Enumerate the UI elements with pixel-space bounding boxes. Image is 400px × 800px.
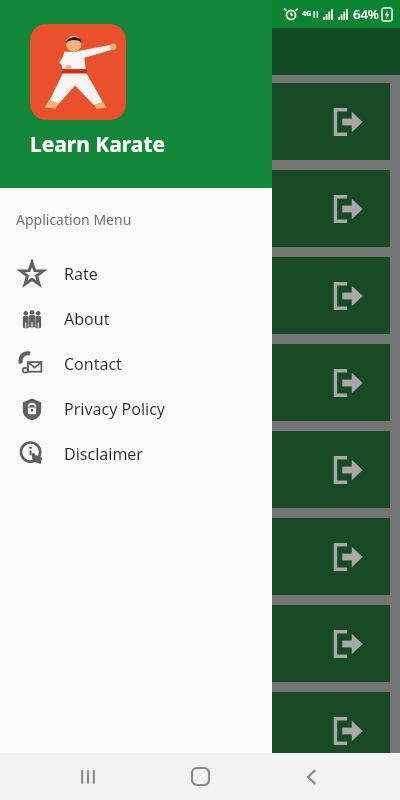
staticText: Tsuki (Punch Strike) xyxy=(24,286,161,306)
button[interactable]: Uke Blocks Guard xyxy=(10,344,390,421)
staticText: Yoko Geri (Side Kick) xyxy=(24,199,167,219)
staticText: Application Menu xyxy=(16,210,132,229)
staticText: Contact xyxy=(64,353,122,375)
button[interactable]: Yoko Geri (Side Kick) xyxy=(10,170,390,247)
staticText: Rate xyxy=(64,263,98,285)
staticText: 4G xyxy=(302,9,312,19)
button[interactable]: Privacy Policy xyxy=(0,386,272,431)
button[interactable]: Shuto Uchi Hand xyxy=(10,692,390,769)
button[interactable]: Empi Uchi Elbow xyxy=(10,605,390,682)
staticText: Kata Heian Shodan xyxy=(24,460,158,480)
staticText: Karate Techniques xyxy=(16,39,183,65)
button[interactable]: Rate xyxy=(0,251,272,296)
button[interactable]: Mawashi Geri (Kick) xyxy=(10,518,390,595)
staticText: Privacy Policy xyxy=(64,398,165,420)
staticText: Learn Karate xyxy=(30,130,166,159)
staticText: Mae Geri (Front Step) xyxy=(24,112,174,132)
staticText: 64% xyxy=(353,5,379,23)
button[interactable]: Back xyxy=(288,753,336,800)
button[interactable]: Home xyxy=(176,753,224,800)
button[interactable]: Kata Heian Shodan xyxy=(10,431,390,508)
button[interactable]: About xyxy=(0,296,272,341)
button[interactable]: Disclaimer xyxy=(0,431,272,476)
staticText: Disclaimer xyxy=(64,443,143,465)
staticText: About xyxy=(64,308,110,330)
button[interactable]: Tsuki (Punch Strike) xyxy=(10,257,390,334)
button[interactable]: Contact xyxy=(0,341,272,386)
button[interactable]: Recent apps xyxy=(64,753,112,800)
button[interactable]: Mae Geri (Front Step) xyxy=(10,83,390,160)
